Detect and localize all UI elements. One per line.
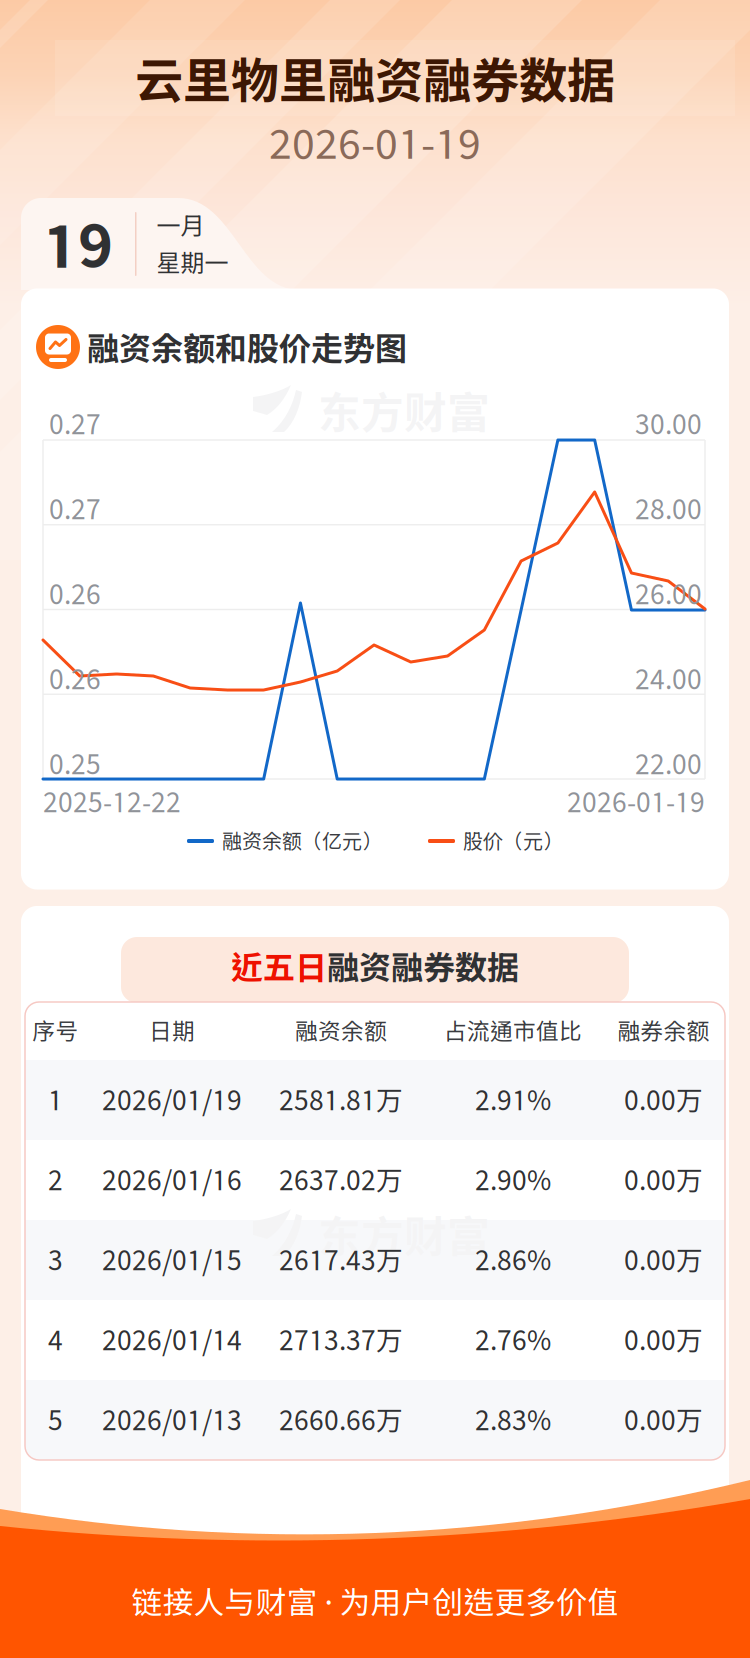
staticText: 东方财富 (318, 1211, 490, 1261)
staticText: 融资余额（亿元） (222, 829, 382, 853)
staticText: 28.00 (635, 493, 702, 525)
staticText: 0.27 (49, 493, 101, 525)
staticText: 融资余额和股价走势图 (87, 329, 407, 367)
staticText: 2026-01-19 (269, 119, 481, 167)
staticText: 2713.37万 (279, 1324, 403, 1356)
staticText: 2026-01-19 (567, 786, 705, 818)
staticText: 3 (48, 1244, 63, 1276)
staticText: 2.90% (475, 1164, 551, 1196)
staticText: 30.00 (635, 408, 702, 440)
staticText: 2.86% (475, 1244, 551, 1276)
staticText: 0.00万 (624, 1084, 703, 1116)
staticText: 26.00 (635, 578, 702, 610)
staticText: 日期 (149, 1018, 195, 1044)
staticText: 0.26 (49, 663, 101, 695)
staticText: 2 (48, 1164, 63, 1196)
staticText: 近五日 (231, 948, 327, 986)
staticText: 0.26 (49, 578, 101, 610)
staticText: 0.00万 (624, 1164, 703, 1196)
staticText: 2.76% (475, 1324, 551, 1356)
staticText: 4 (48, 1324, 63, 1356)
staticText: 2025-12-22 (43, 786, 181, 818)
staticText: 2637.02万 (279, 1164, 403, 1196)
staticText: 2026/01/16 (102, 1164, 242, 1196)
staticText: 0.00万 (624, 1404, 703, 1436)
staticText: 链接人与财富 · 为用户创造更多价值 (131, 1584, 618, 1620)
staticText: 2026/01/19 (102, 1084, 242, 1116)
staticText: 2026/01/13 (102, 1404, 242, 1436)
staticText: 融资融券数据 (327, 948, 519, 986)
staticText: 股价（元） (463, 829, 563, 853)
staticText: 2581.81万 (279, 1084, 403, 1116)
staticText: 2617.43万 (279, 1244, 403, 1276)
staticText: 2.83% (475, 1404, 551, 1436)
staticText: 星期一 (156, 248, 228, 277)
staticText: 24.00 (635, 663, 702, 695)
staticText: 22.00 (635, 748, 702, 780)
staticText: 云里物里融资融券数据 (135, 52, 615, 108)
staticText: 融资余额 (295, 1018, 387, 1044)
staticText: 0.00万 (624, 1324, 703, 1356)
staticText: 5 (48, 1404, 63, 1436)
staticText: 序号 (32, 1018, 78, 1044)
staticText: 0.27 (49, 408, 101, 440)
staticText: 东方财富 (318, 387, 490, 437)
staticText: 2660.66万 (279, 1404, 403, 1436)
staticText: 2026/01/15 (102, 1244, 242, 1276)
staticText: 占流通市值比 (444, 1018, 582, 1044)
staticText: 2026/01/14 (102, 1324, 242, 1356)
staticText: 2.91% (475, 1084, 551, 1116)
staticText: 1 (48, 1084, 63, 1116)
staticText: 0.00万 (624, 1244, 703, 1276)
staticText: 19 (43, 209, 113, 279)
staticText: 一月 (156, 211, 204, 239)
staticText: 融券余额 (617, 1018, 709, 1044)
staticText: 0.25 (49, 748, 101, 780)
